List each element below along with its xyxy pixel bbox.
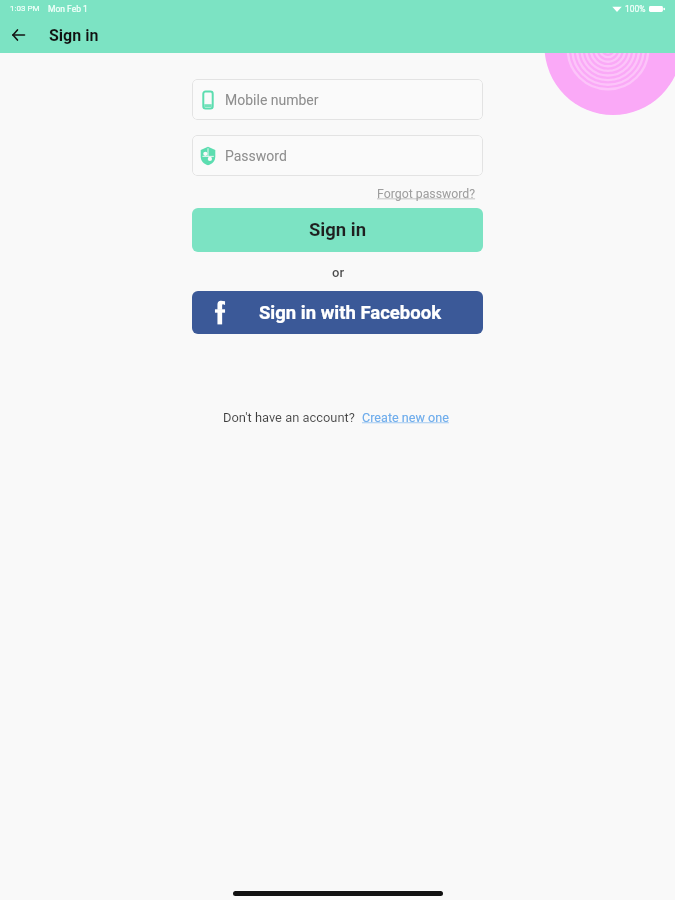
button[interactable]: Mobile number <box>192 79 483 120</box>
button[interactable]: Forgot password? <box>373 183 480 205</box>
staticText: Password <box>225 148 287 164</box>
staticText: Mobile number <box>225 92 319 108</box>
button[interactable]: Create new one <box>358 406 453 429</box>
staticText: 1:03 PM <box>10 4 40 13</box>
button[interactable]: Password <box>192 135 483 176</box>
button[interactable]: Sign in <box>192 208 483 252</box>
staticText: Sign in <box>309 219 367 241</box>
staticText: 100% <box>625 4 646 14</box>
staticText: Create new one <box>362 410 449 425</box>
button[interactable]: Sign in with Facebook <box>192 291 483 334</box>
button[interactable]: Back <box>0 17 36 53</box>
staticText: Sign in <box>49 26 99 45</box>
staticText: Forgot password? <box>377 187 476 201</box>
staticText: Sign in with Facebook <box>259 302 442 324</box>
staticText: Mon Feb 1 <box>48 4 88 14</box>
staticText: Don't have an account? <box>223 410 355 425</box>
staticText: or <box>332 265 344 280</box>
